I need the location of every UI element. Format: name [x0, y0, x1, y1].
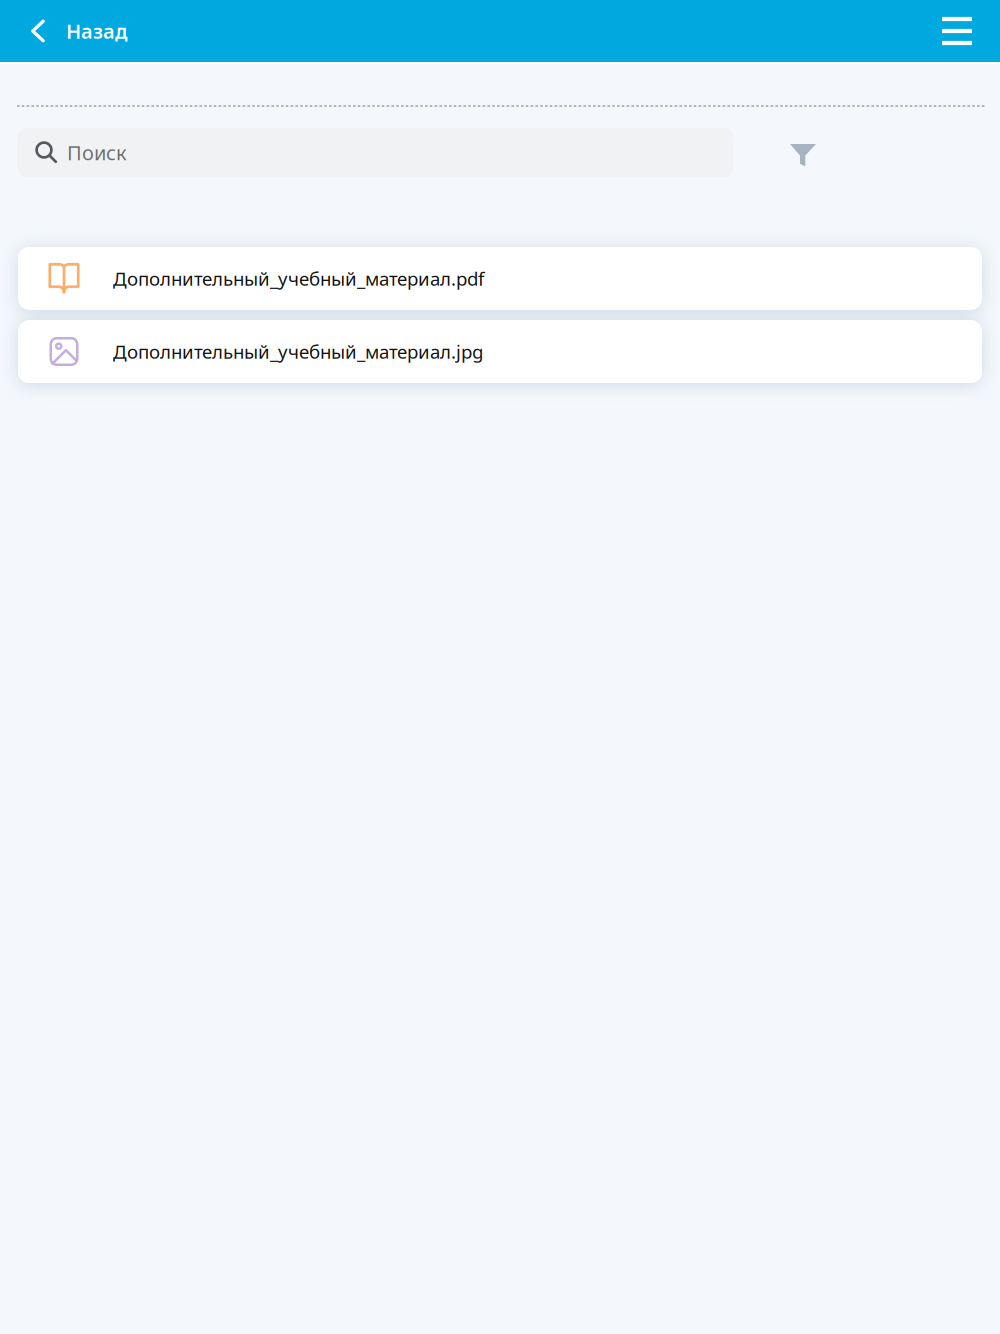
staticText: Назад [66, 18, 128, 44]
staticText: Дополнительный_учебный_материал.pdf [113, 266, 484, 291]
button[interactable]: Назад [0, 0, 144, 62]
button[interactable]: Дополнительный_учебный_материал.pdf [18, 247, 982, 310]
button[interactable]: Дополнительный_учебный_материал.jpg [18, 320, 982, 383]
button[interactable]: Поиск [17, 128, 733, 177]
button[interactable]: Filter [767, 128, 839, 177]
button[interactable]: Menu [921, 0, 993, 62]
staticText: Поиск [67, 139, 127, 166]
staticText: Дополнительный_учебный_материал.jpg [113, 339, 483, 364]
